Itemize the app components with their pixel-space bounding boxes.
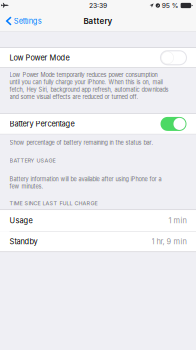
button[interactable]: Usage bbox=[0, 210, 196, 231]
staticText: 1 hr, 9 min bbox=[151, 237, 186, 246]
staticText: Battery information will be available af… bbox=[9, 176, 161, 190]
button[interactable]: Battery Percentage bbox=[0, 114, 196, 134]
staticText: Battery bbox=[83, 16, 112, 26]
staticText: Battery Percentage bbox=[9, 119, 74, 128]
staticText: 1 min bbox=[168, 216, 186, 225]
staticText: TIME SINCE LAST FULL CHARGE bbox=[9, 200, 97, 206]
staticText: 23:39 bbox=[89, 1, 107, 10]
button[interactable]: Standby bbox=[0, 232, 196, 252]
staticText: Low Power Mode temporarily reduces power… bbox=[9, 71, 168, 100]
staticText: BATTERY USAGE bbox=[9, 157, 55, 164]
button[interactable]: Settings bbox=[0, 11, 47, 31]
staticText: Standby bbox=[9, 237, 37, 246]
staticText: Usage bbox=[9, 216, 32, 225]
staticText: Show percentage of battery remaining in … bbox=[9, 139, 153, 146]
staticText: 95 % bbox=[162, 1, 179, 10]
button[interactable]: Low Power Mode bbox=[0, 48, 196, 67]
staticText: Settings bbox=[14, 16, 42, 25]
staticText: Low Power Mode bbox=[9, 53, 69, 62]
